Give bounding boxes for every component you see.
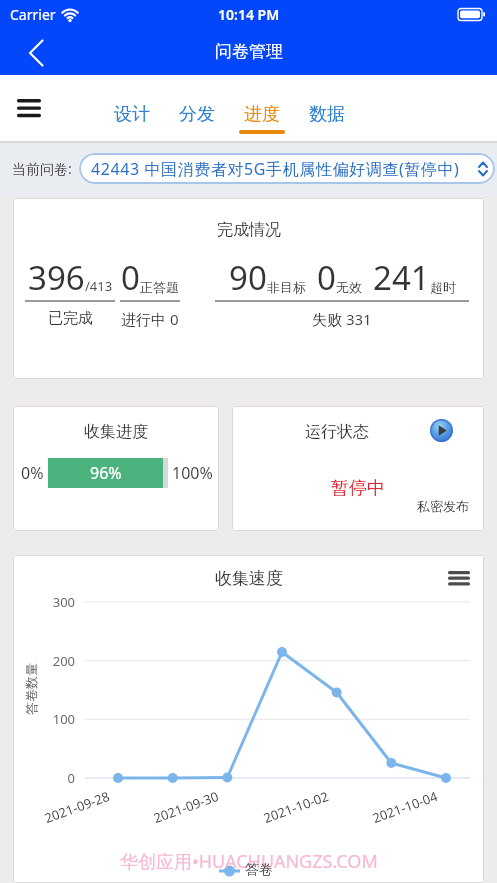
button[interactable] xyxy=(0,32,40,72)
staticText: 100 xyxy=(37,710,75,728)
staticText: 300 xyxy=(37,593,75,611)
staticText: 暂停中 xyxy=(331,477,385,500)
button[interactable] xyxy=(448,571,470,587)
staticText: 42443 中国消费者对5G手机属性偏好调查(暂停中) xyxy=(91,158,460,180)
staticText: 答卷数量 xyxy=(23,663,39,715)
staticText: 2021-10-02 xyxy=(261,787,331,827)
staticText: 进度 xyxy=(244,103,280,126)
button[interactable]: 分发 xyxy=(174,103,220,134)
staticText: 失败 331 xyxy=(312,309,372,329)
staticText: 非目标 xyxy=(267,279,306,295)
button[interactable]: 进度 xyxy=(239,103,285,134)
staticText: 进行中 0 xyxy=(121,309,179,329)
staticText: 正答题 xyxy=(140,279,179,295)
staticText: 数据 xyxy=(309,103,345,126)
staticText: 问卷管理 xyxy=(215,41,283,62)
staticText: 华创应用•HUACHUANGZS.COM xyxy=(120,849,378,874)
staticText: 396 xyxy=(28,255,85,300)
staticText: 241 xyxy=(373,255,430,300)
staticText: 收集进度 xyxy=(84,422,148,442)
staticText: 96% xyxy=(90,462,122,484)
button[interactable]: 42443 中国消费者对5G手机属性偏好调查(暂停中) xyxy=(79,153,495,184)
staticText: 私密发布 xyxy=(417,498,469,514)
staticText: 完成情况 xyxy=(217,220,281,240)
staticText: 0% xyxy=(21,462,44,484)
staticText: 200 xyxy=(37,652,75,670)
button[interactable]: 数据 xyxy=(304,103,350,134)
button[interactable] xyxy=(430,419,453,442)
staticText: 90 xyxy=(229,255,267,300)
staticText: 无效 xyxy=(336,279,362,295)
button[interactable]: 设计 xyxy=(109,103,155,134)
staticText: 运行状态 xyxy=(305,422,369,442)
staticText: 已完成 xyxy=(48,309,93,328)
staticText: 2021-10-04 xyxy=(370,787,440,827)
staticText: 2021-09-28 xyxy=(42,787,112,827)
staticText: 2021-09-30 xyxy=(151,787,221,827)
staticText: 当前问卷: xyxy=(12,159,72,178)
staticText: 收集速度 xyxy=(215,568,283,589)
staticText: 答卷 xyxy=(245,861,273,879)
button[interactable] xyxy=(17,98,41,118)
staticText: 100% xyxy=(172,462,213,484)
staticText: 0 xyxy=(317,255,336,300)
staticText: 设计 xyxy=(114,103,150,126)
staticText: 0 xyxy=(37,769,75,787)
staticText: 超时 xyxy=(430,279,456,295)
staticText: Carrier xyxy=(10,5,56,24)
staticText: 0 xyxy=(121,255,140,300)
staticText: 10:14 PM xyxy=(218,5,280,24)
staticText: /413 xyxy=(85,277,113,295)
staticText: 分发 xyxy=(179,103,215,126)
